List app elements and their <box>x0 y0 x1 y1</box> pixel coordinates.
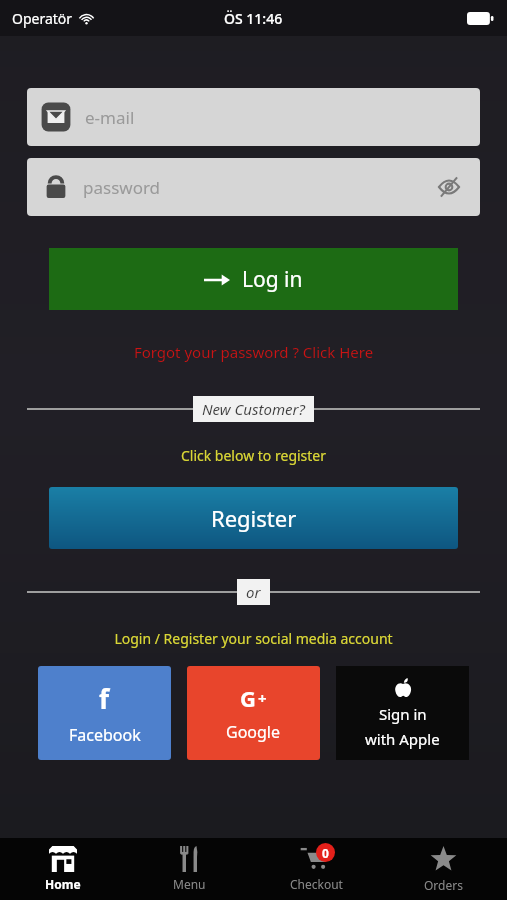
button[interactable]: password <box>27 158 480 216</box>
staticText: Home <box>45 876 81 892</box>
button[interactable]: Orders <box>380 838 507 900</box>
staticText: with Apple <box>365 729 440 749</box>
button[interactable]: G <box>187 666 320 760</box>
staticText: Orders <box>424 877 463 893</box>
staticText: Operatör <box>12 9 73 28</box>
staticText: e-mail <box>85 106 135 129</box>
button[interactable]: f <box>38 666 171 760</box>
button[interactable]: e-mail <box>27 88 480 146</box>
button[interactable]: Register <box>49 487 458 549</box>
staticText: or <box>246 582 261 602</box>
staticText: Sign in <box>379 704 427 724</box>
button[interactable]: Log in <box>49 248 458 310</box>
button[interactable]: Sign in <box>336 666 469 760</box>
button[interactable]: Forgot your password ? Click Here <box>0 340 507 364</box>
button[interactable]: Home <box>0 838 126 900</box>
staticText: f <box>99 681 110 716</box>
staticText: G <box>240 683 256 713</box>
staticText: password <box>83 176 432 199</box>
staticText: Google <box>226 721 281 743</box>
staticText: Log in <box>242 265 303 294</box>
staticText: New Customer? <box>202 399 305 419</box>
button[interactable]: 0 <box>253 838 380 900</box>
staticText: Click below to register <box>0 446 507 465</box>
staticText: + <box>258 688 267 708</box>
button[interactable]: Menu <box>126 838 253 900</box>
staticText: Menu <box>173 876 206 892</box>
staticText: Register <box>211 503 297 533</box>
staticText: 0 <box>322 845 329 861</box>
staticText: Checkout <box>290 876 343 892</box>
staticText: Facebook <box>69 724 141 746</box>
staticText: Login / Register your social media accou… <box>0 629 507 648</box>
staticText: ÖS 11:46 <box>224 9 283 28</box>
button[interactable]: Show password <box>432 170 466 204</box>
